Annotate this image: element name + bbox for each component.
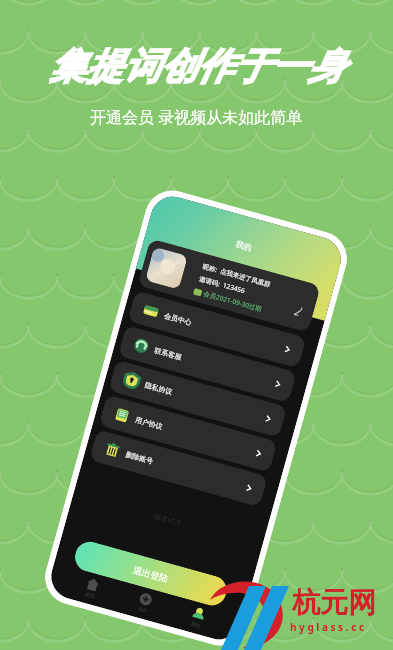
staticText: 开通会员 录视频从未如此简单 [90,106,303,128]
button[interactable]: 联系客服 [118,325,297,403]
staticText: 首页 [84,591,95,599]
staticText: 集提词创作于一身 [49,43,345,90]
button[interactable]: 昵称: 点我来进了凤凰群 [137,238,321,333]
button[interactable]: 隐私协议 [108,360,287,438]
staticText: 退出登陆 [132,564,169,584]
staticText: 联系客服 [153,346,183,362]
staticText: 会员2021-09-30过期 [202,289,263,313]
button[interactable]: 我的 [183,605,212,631]
staticText: 我的 [190,620,201,629]
staticText: 我的 [235,239,253,252]
staticText: h y g l a s s . c c [290,620,365,634]
button[interactable]: 退出登陆 [72,538,230,609]
button[interactable]: 编辑资料 [290,303,306,319]
staticText: 创作 [137,605,148,614]
staticText: 用户协议 [134,415,164,431]
button[interactable]: 删除账号 [89,429,268,507]
button[interactable]: 首页 [77,575,106,601]
staticText: 邀请码: 123456 [198,274,246,295]
button[interactable]: 会员中心 [127,290,306,368]
staticText: 隐私协议 [144,380,173,396]
button[interactable]: 创作 [130,590,159,616]
staticText: 会员中心 [163,311,192,327]
staticText: 版本v1.0 [153,512,183,529]
staticText: 昵称: 点我来进了凤凰群 [202,261,272,289]
staticText: 删除账号 [125,450,154,466]
staticText: 杭元网 [292,585,376,620]
button[interactable]: 用户协议 [99,394,278,472]
